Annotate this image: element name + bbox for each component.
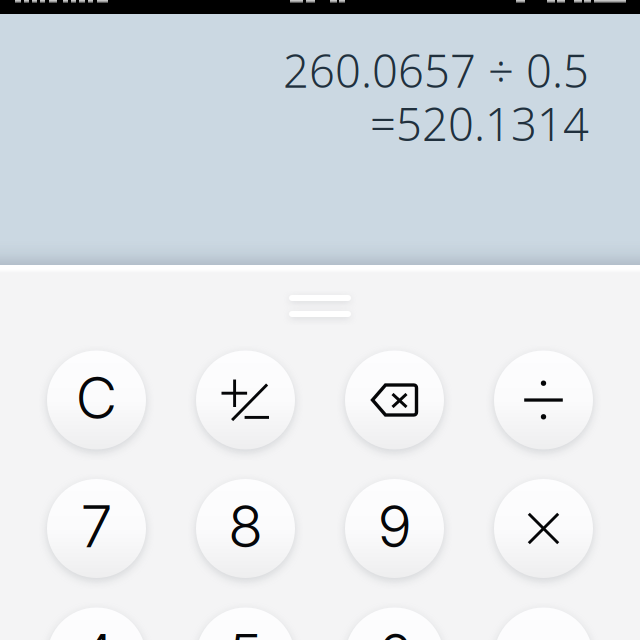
button[interactable]: Divide: [494, 350, 593, 449]
button[interactable]: Multiply: [494, 479, 593, 578]
button[interactable]: 8: [196, 479, 295, 578]
staticText: C: [75, 363, 117, 433]
staticText: 9: [377, 492, 411, 561]
button[interactable]: Plus minus: [196, 350, 295, 449]
button[interactable]: Minus: [494, 607, 593, 640]
staticText: 6: [377, 620, 411, 640]
staticText: 5: [228, 620, 262, 640]
button[interactable]: 6: [345, 607, 444, 640]
button[interactable]: 7: [47, 479, 146, 578]
staticText: 8: [228, 492, 263, 561]
staticText: 7: [80, 492, 112, 561]
button[interactable]: 5: [196, 607, 295, 640]
staticText: 260.0657 ÷ 0.5: [283, 40, 589, 100]
button[interactable]: Backspace: [345, 350, 444, 449]
staticText: 4: [78, 620, 114, 640]
button[interactable]: Clear: [47, 350, 146, 449]
button[interactable]: 4: [47, 607, 146, 640]
button[interactable]: 9: [345, 479, 444, 578]
staticText: =520.1314: [370, 93, 589, 153]
